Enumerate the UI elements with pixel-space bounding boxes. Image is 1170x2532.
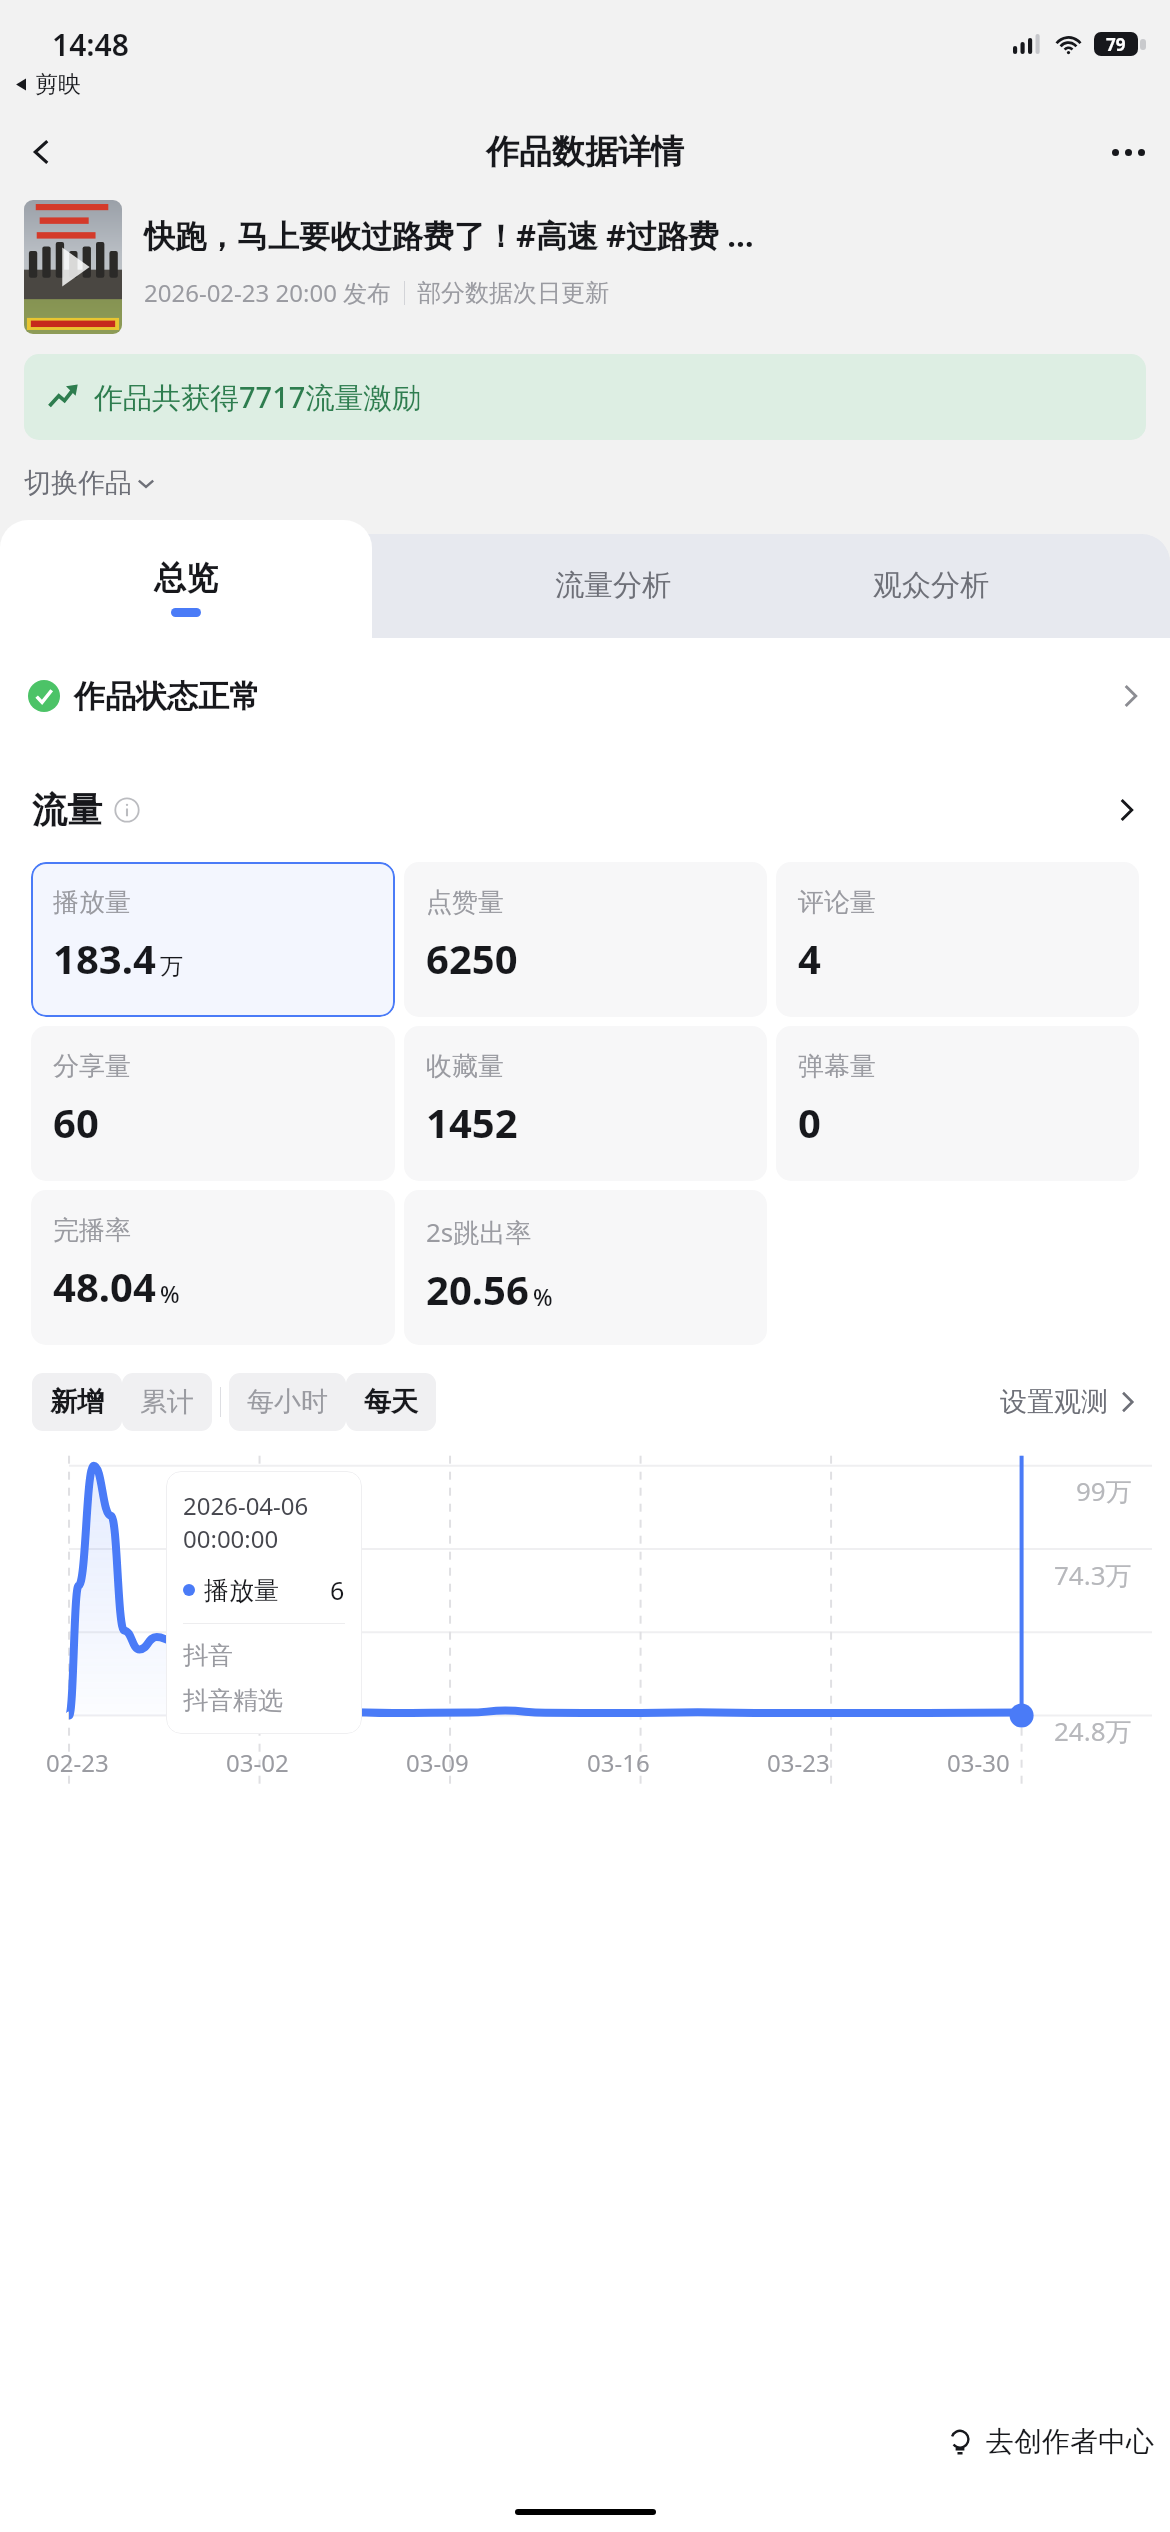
button[interactable]: 快跑，马上要收过路费了！#高速 #过路费 … xyxy=(0,200,1170,334)
staticText: 点赞量 xyxy=(426,886,504,919)
staticText: 20.56 xyxy=(426,1262,529,1316)
staticText: 03-02 xyxy=(226,1746,289,1779)
staticText: 剪映 xyxy=(35,70,81,99)
staticText: % xyxy=(160,1278,180,1309)
staticText: 作品共获得7717流量激励 xyxy=(94,377,422,417)
staticText: 6 xyxy=(330,1573,345,1607)
button[interactable]: 弹幕量 xyxy=(776,1026,1139,1181)
staticText: 播放量 xyxy=(204,1575,279,1606)
staticText: 2026-02-23 20:00 发布 xyxy=(144,276,392,309)
button[interactable]: 播放量 xyxy=(31,862,395,1017)
staticText: 03-16 xyxy=(587,1746,650,1779)
button[interactable]: 观众分析 xyxy=(853,551,1009,620)
staticText: 设置观测 xyxy=(1000,1385,1108,1419)
button[interactable]: 设置观测 xyxy=(1000,1377,1138,1427)
staticText: 分享量 xyxy=(53,1050,131,1083)
staticText: 弹幕量 xyxy=(798,1050,876,1083)
staticText: 作品状态正常 xyxy=(74,677,260,716)
staticText: 抖音精选 xyxy=(183,1685,283,1716)
staticText: 新增 xyxy=(50,1385,104,1419)
staticText: 02-23 xyxy=(46,1746,109,1779)
button[interactable]: 返回 xyxy=(12,122,72,182)
staticText: 每天 xyxy=(364,1385,418,1419)
button[interactable]: 完播率 xyxy=(31,1190,395,1345)
staticText: 抖音 xyxy=(183,1640,233,1671)
staticText: 99万 xyxy=(1076,1473,1132,1509)
staticText: 6250 xyxy=(426,931,518,985)
staticText: 流量 xyxy=(32,788,102,832)
staticText: 03-23 xyxy=(767,1746,830,1779)
staticText: 60 xyxy=(53,1095,99,1149)
staticText: 切换作品 xyxy=(24,466,132,500)
button[interactable]: 更多 xyxy=(1098,122,1158,182)
button[interactable]: 流量 xyxy=(18,788,1152,832)
staticText: % xyxy=(533,1281,553,1312)
staticText: 完播率 xyxy=(53,1214,131,1247)
staticText: 评论量 xyxy=(798,886,876,919)
staticText: 作品数据详情 xyxy=(486,131,684,173)
button[interactable]: 作品状态正常 xyxy=(0,638,1170,754)
staticText: 2026-04-06 00:00:00 xyxy=(183,1489,345,1555)
staticText: 累计 xyxy=(140,1385,194,1419)
staticText: 快跑，马上要收过路费了！#高速 #过路费 … xyxy=(144,214,754,256)
button[interactable]: 累计 xyxy=(122,1373,212,1431)
button[interactable]: 评论量 xyxy=(776,862,1139,1017)
staticText: 24.8万 xyxy=(1054,1713,1132,1749)
staticText: 4 xyxy=(798,931,821,985)
staticText: 48.04 xyxy=(53,1259,156,1313)
button[interactable]: 2s跳出率 xyxy=(404,1190,767,1345)
button[interactable]: 每天 xyxy=(346,1373,436,1431)
staticText: 14:48 xyxy=(52,24,129,64)
staticText: 74.3万 xyxy=(1054,1557,1132,1593)
button[interactable]: 总览 xyxy=(0,520,372,638)
staticText: 观众分析 xyxy=(873,567,989,604)
button[interactable]: 切换作品 xyxy=(24,466,156,500)
button[interactable]: 新增 xyxy=(32,1373,122,1431)
staticText: 部分数据次日更新 xyxy=(417,278,609,308)
staticText: 2s跳出率 xyxy=(426,1214,532,1250)
staticText: 79 xyxy=(1106,33,1126,56)
button[interactable]: 收藏量 xyxy=(404,1026,767,1181)
staticText: 总览 xyxy=(154,558,218,598)
staticText: 流量分析 xyxy=(555,567,671,604)
button[interactable]: 分享量 xyxy=(31,1026,395,1181)
button[interactable]: 去创作者中心 xyxy=(922,2410,1170,2473)
staticText: 收藏量 xyxy=(426,1050,504,1083)
button[interactable]: 流量分析 xyxy=(535,551,691,620)
staticText: 去创作者中心 xyxy=(986,2424,1154,2459)
staticText: 1452 xyxy=(426,1095,518,1149)
staticText: 万 xyxy=(160,952,183,981)
button[interactable]: 作品共获得7717流量激励 xyxy=(24,354,1146,440)
staticText: 0 xyxy=(798,1095,821,1149)
button[interactable]: 点赞量 xyxy=(404,862,767,1017)
staticText: 03-30 xyxy=(947,1746,1010,1779)
staticText: 播放量 xyxy=(53,886,131,919)
staticText: 183.4 xyxy=(53,931,156,985)
button[interactable]: 每小时 xyxy=(229,1373,346,1431)
staticText: 每小时 xyxy=(247,1385,328,1419)
staticText: 03-09 xyxy=(406,1746,469,1779)
